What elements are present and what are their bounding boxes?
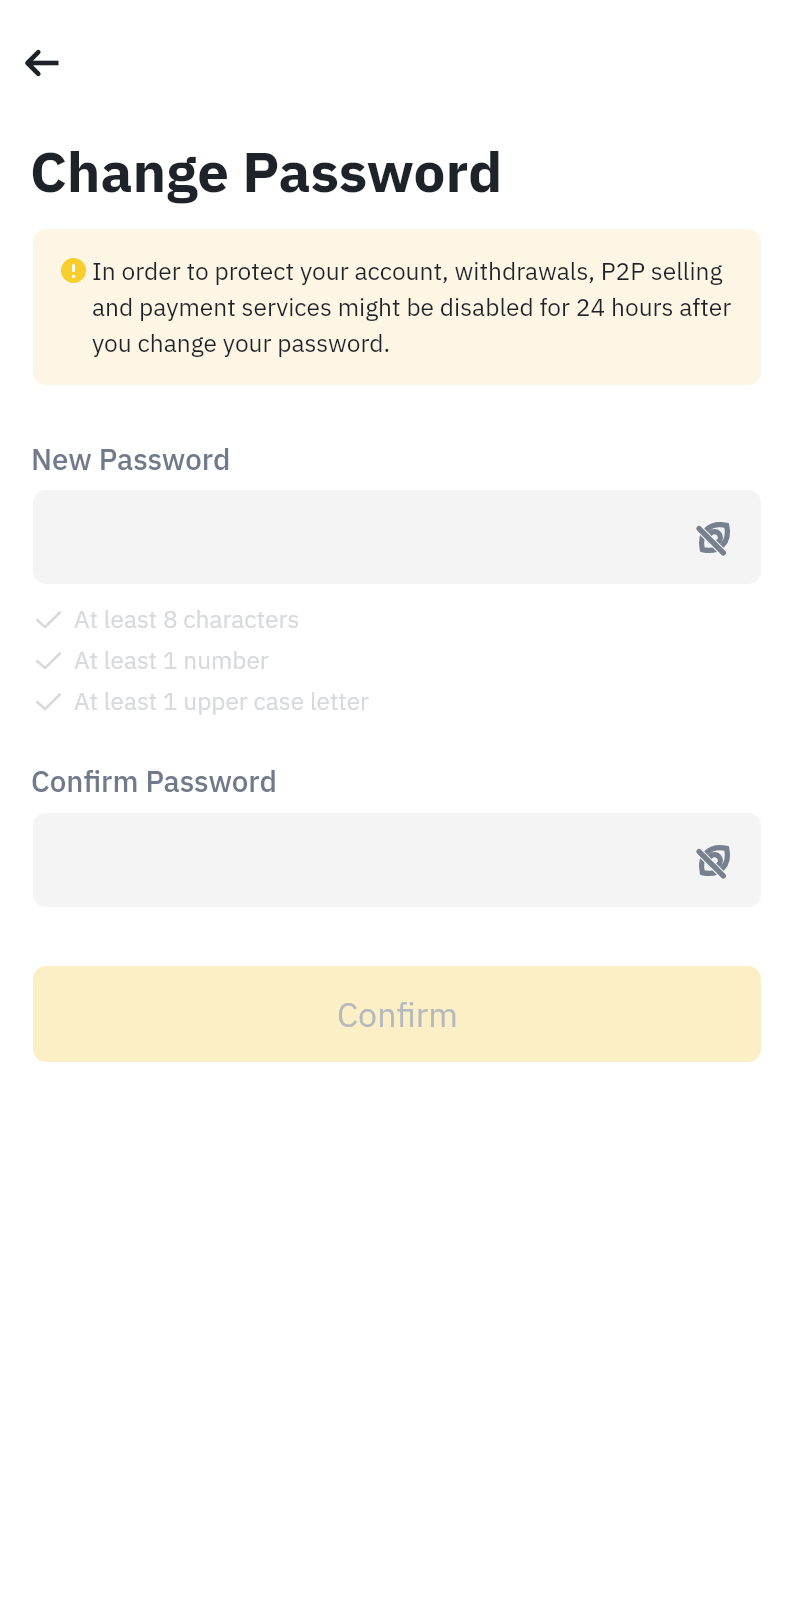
button[interactable]: Back [13,33,73,93]
staticText: Change Password [30,134,503,207]
staticText: Confirm [337,992,458,1036]
button[interactable]: Confirm [33,966,761,1062]
button[interactable]: Show password [678,501,750,573]
staticText: New Password [31,440,231,478]
staticText: At least 1 upper case letter [74,685,370,717]
staticText: At least 1 number [74,644,269,676]
staticText: In order to protect your account, withdr… [92,252,741,360]
staticText: At least 8 characters [74,603,300,635]
staticText: Confirm Password [31,762,277,800]
button[interactable]: Show password [678,824,750,896]
